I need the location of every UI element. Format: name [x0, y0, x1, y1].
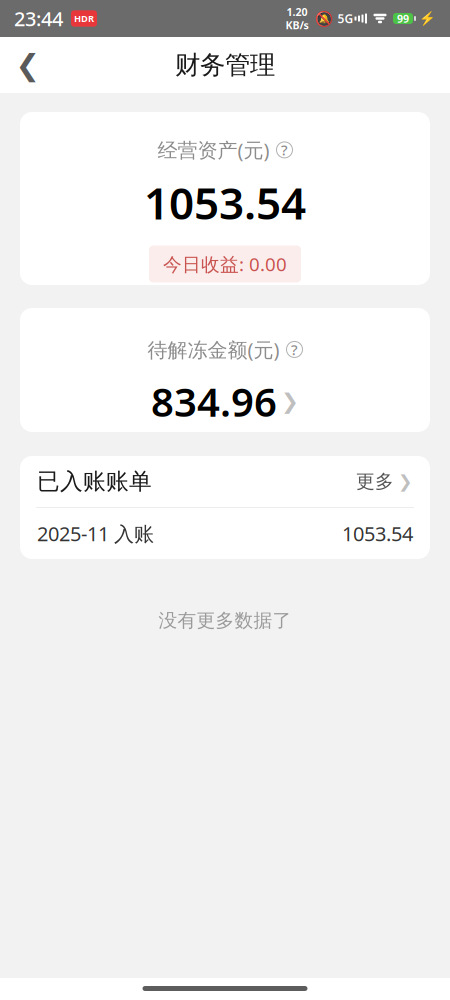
staticText: ❯	[281, 389, 299, 413]
staticText: 今日收益: 0.00	[163, 252, 287, 276]
staticText: 已入账账单	[37, 468, 152, 495]
staticText: 🔕	[314, 10, 332, 27]
staticText: 财务管理	[175, 49, 275, 80]
staticText: ?	[281, 140, 288, 160]
staticText: 99	[397, 11, 409, 26]
staticText: 1053.54	[144, 173, 306, 232]
button[interactable]: 返回	[0, 37, 56, 93]
staticText: 834.96	[151, 375, 277, 428]
button[interactable]: 待解冻金额说明	[286, 341, 302, 357]
staticText: ❮	[15, 48, 40, 82]
staticText: 23:44	[14, 5, 63, 32]
staticText: 5G	[337, 10, 353, 26]
staticText: 经营资产(元)	[157, 137, 269, 163]
staticText: 1053.54	[342, 520, 413, 547]
staticText: KB/s	[285, 18, 308, 32]
staticText: ❯	[398, 472, 413, 491]
staticText: 2025-11 入账	[37, 520, 154, 547]
staticText: 没有更多数据了	[158, 609, 291, 632]
staticText: 待解冻金额(元)	[147, 336, 279, 363]
staticText: ?	[291, 340, 298, 359]
button[interactable]: 经营资产说明	[276, 142, 292, 158]
staticText: 更多	[356, 470, 394, 493]
button[interactable]: 更多	[356, 470, 413, 493]
button[interactable]: 834.96	[151, 363, 299, 428]
staticText: ⚡	[419, 11, 436, 26]
staticText: HDR	[74, 12, 94, 25]
staticText: 1.20	[286, 5, 307, 19]
